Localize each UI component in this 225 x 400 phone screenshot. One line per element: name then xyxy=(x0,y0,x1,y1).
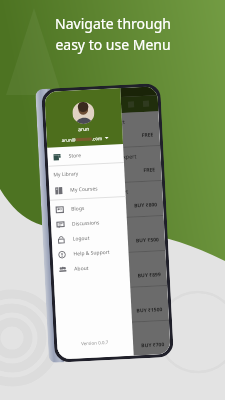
button[interactable]: Blogs xyxy=(50,199,127,218)
staticText: Blogs xyxy=(71,205,85,213)
button[interactable]: My Courses xyxy=(49,179,126,200)
staticText: About xyxy=(74,265,89,272)
staticText: FREE xyxy=(143,166,155,174)
button[interactable]: Logout xyxy=(51,229,128,248)
staticText: FREE xyxy=(141,131,154,139)
staticText: Learn Excel From Expert xyxy=(55,223,118,233)
staticText: BUY ₹500 xyxy=(136,236,159,244)
staticText: Help & Support xyxy=(73,249,111,258)
staticText: arun@ xyxy=(62,136,76,143)
staticText: Version 0.0.7 xyxy=(81,339,109,346)
staticText: BUY ₹700 xyxy=(141,341,164,349)
staticText: .com xyxy=(92,135,103,141)
staticText: Learn Big Development xyxy=(57,258,118,268)
staticText: Learn Presentations From Expert xyxy=(52,152,137,164)
staticText: Discussions xyxy=(72,219,100,228)
staticText: Logout xyxy=(73,235,90,243)
staticText: BUY ₹1500 xyxy=(136,306,163,314)
button[interactable]: Help & Support xyxy=(52,244,129,263)
button[interactable]: Discussions xyxy=(51,214,127,233)
button[interactable]: Store xyxy=(47,144,124,166)
button[interactable]: About xyxy=(53,259,130,278)
staticText: My Courses xyxy=(70,185,98,194)
staticText: easy to use Menu xyxy=(55,35,171,54)
staticText: BUY ₹899 xyxy=(137,271,161,279)
staticText: BUY ₹800 xyxy=(134,201,157,209)
staticText: Store xyxy=(68,152,82,160)
staticText: Become a Community Expert xyxy=(50,118,126,129)
staticText: Become a Powerpoint Expert xyxy=(53,188,129,199)
staticText: My Library xyxy=(53,170,79,179)
staticText: Navigate through xyxy=(55,14,171,33)
staticText: arun xyxy=(78,126,90,133)
